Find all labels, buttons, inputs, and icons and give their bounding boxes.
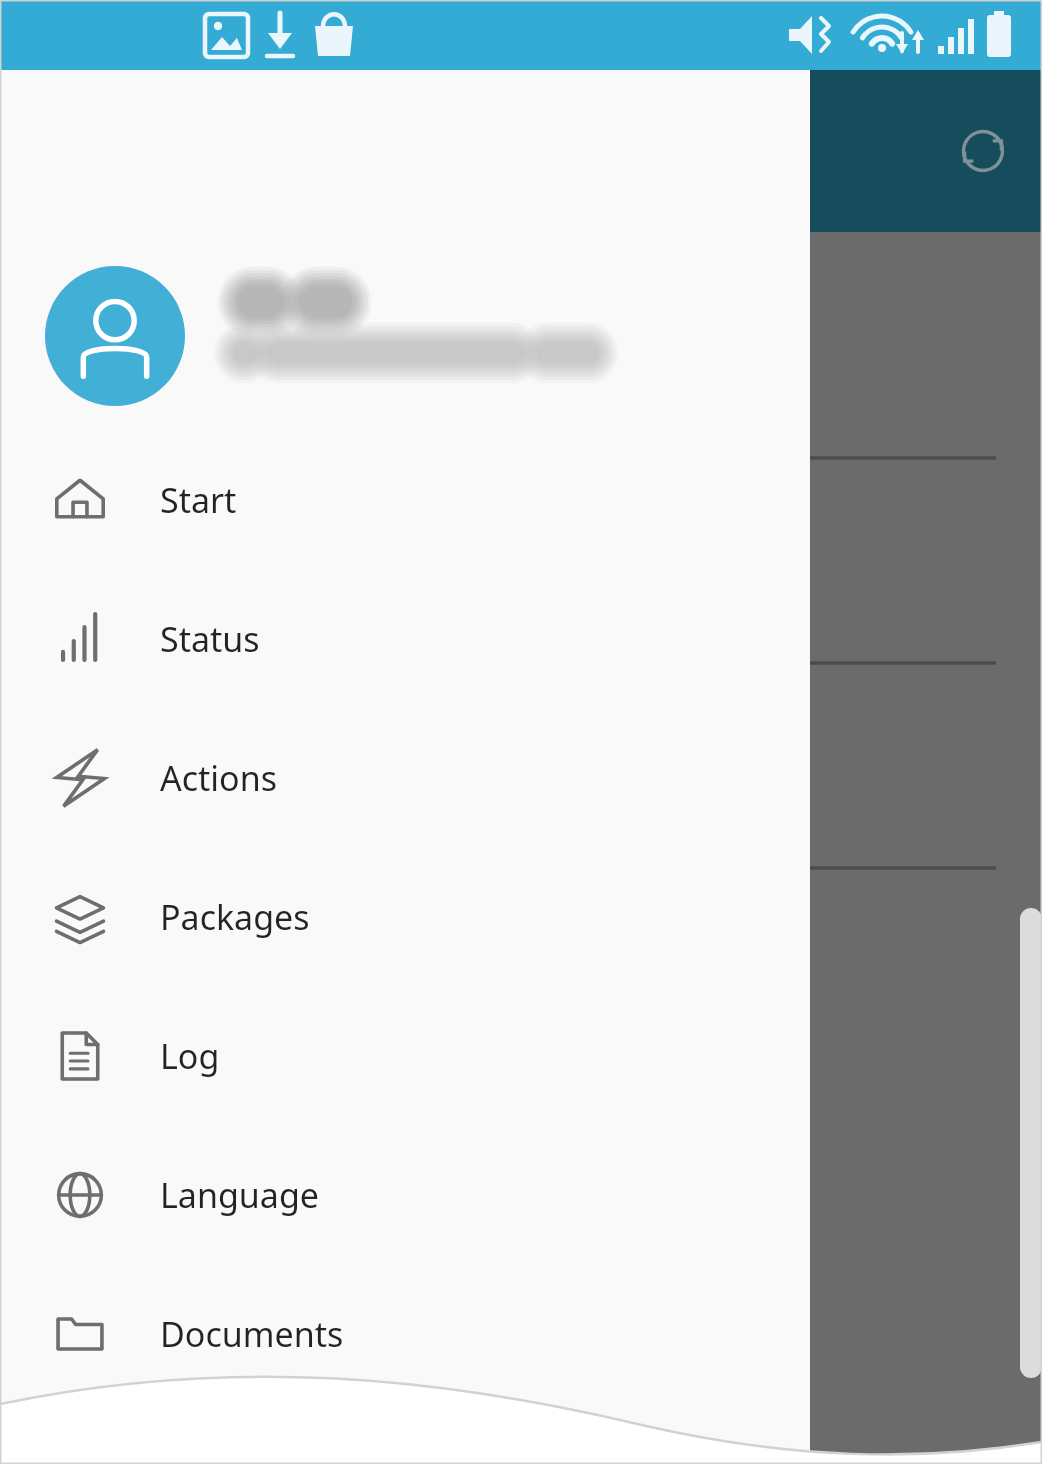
staticText: Actions <box>160 755 277 801</box>
button[interactable]: Start <box>0 430 810 569</box>
button[interactable]: Log <box>0 986 810 1125</box>
staticText: Status <box>160 616 260 662</box>
staticText: Start <box>160 477 237 523</box>
button[interactable]: Language <box>0 1125 810 1264</box>
staticText: Log <box>160 1033 220 1079</box>
button[interactable]: Documents <box>0 1264 810 1403</box>
staticText: Documents <box>160 1311 344 1357</box>
button[interactable]: Status <box>0 569 810 708</box>
staticText: Packages <box>160 894 310 940</box>
button[interactable]: Actions <box>0 708 810 847</box>
button[interactable]: Sync <box>946 114 1020 188</box>
staticText: Language <box>160 1172 319 1218</box>
button[interactable]: Packages <box>0 847 810 986</box>
